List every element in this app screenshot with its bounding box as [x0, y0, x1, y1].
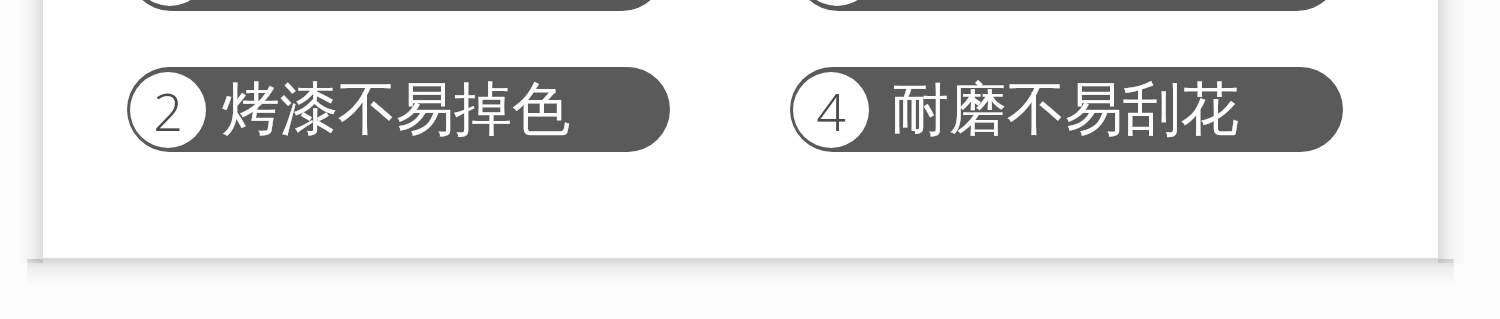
button[interactable]: Feature 1: [128, 0, 665, 11]
button[interactable]: 2: [127, 67, 670, 152]
staticText: 4: [816, 75, 846, 146]
button[interactable]: Feature 3: [795, 0, 1340, 11]
staticText: 烤漆不易掉色: [222, 73, 570, 146]
button[interactable]: 4: [790, 67, 1343, 152]
staticText: 2: [153, 75, 183, 146]
staticText: 耐磨不易刮花: [891, 73, 1239, 146]
